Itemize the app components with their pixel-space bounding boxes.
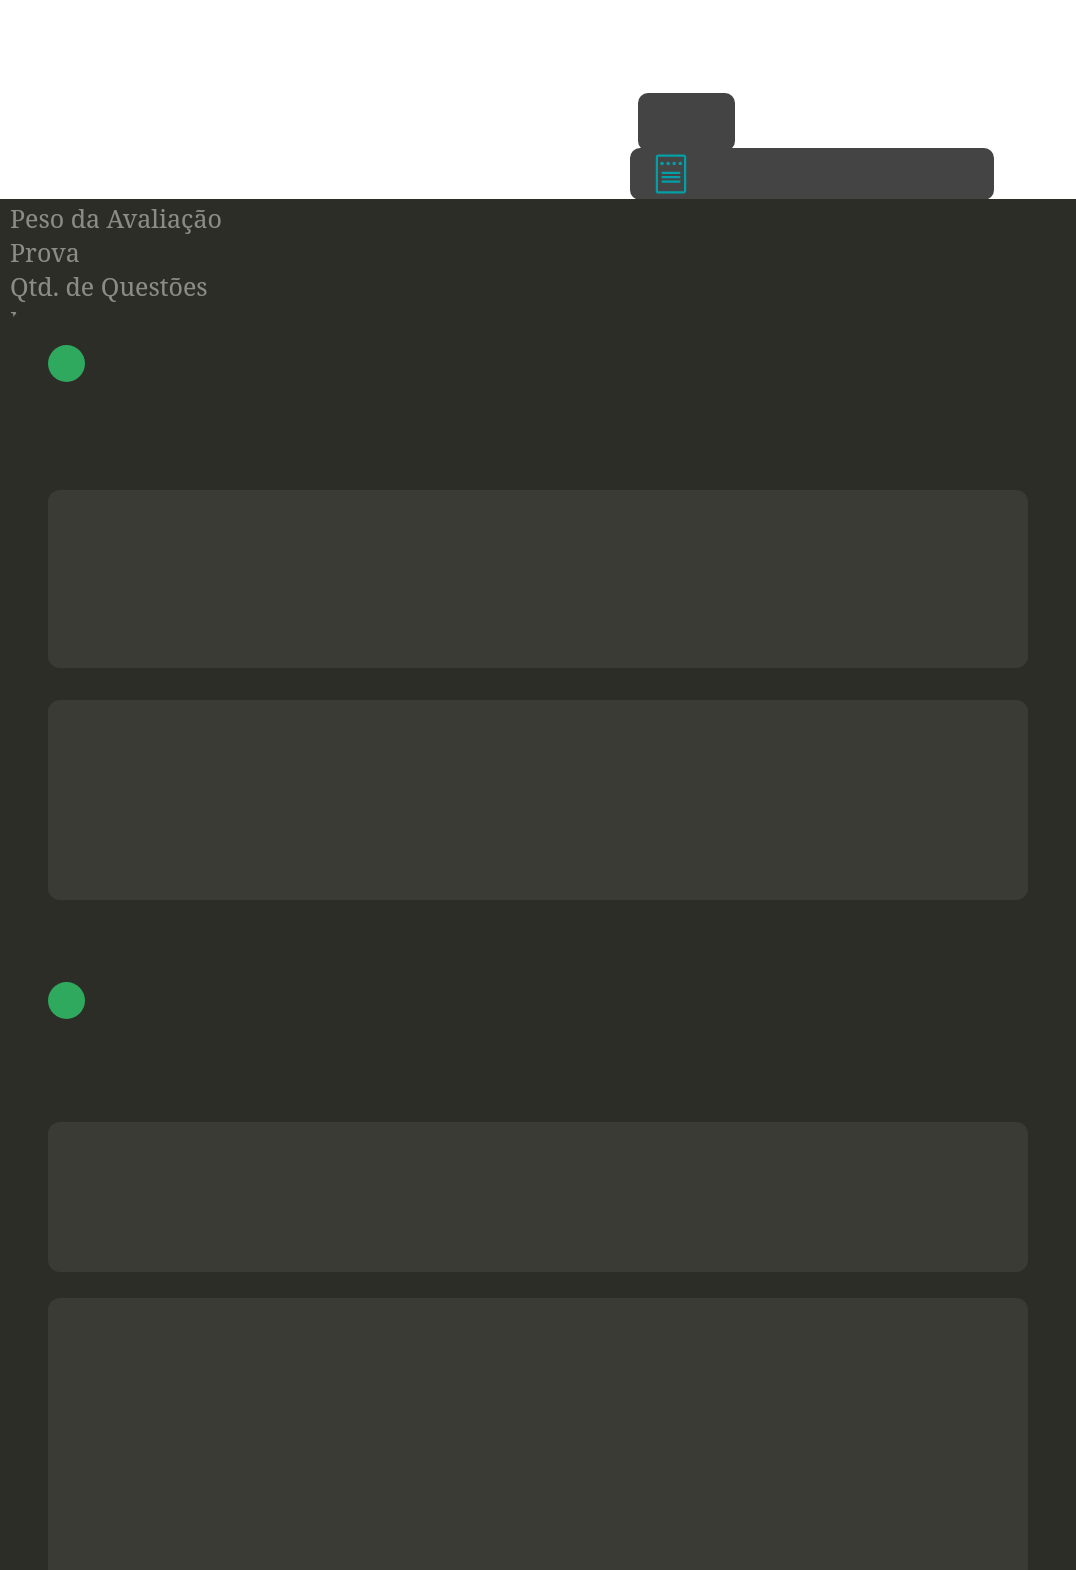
staticText: Nota xyxy=(10,303,67,337)
button[interactable] xyxy=(638,93,735,151)
button[interactable]: Documento xyxy=(655,154,687,194)
staticText: Peso da Avaliação xyxy=(10,201,222,235)
staticText: Prova xyxy=(10,235,80,269)
button[interactable] xyxy=(10,308,1062,938)
button[interactable] xyxy=(10,945,1062,1570)
staticText: Qtd. de Questões xyxy=(10,269,208,303)
